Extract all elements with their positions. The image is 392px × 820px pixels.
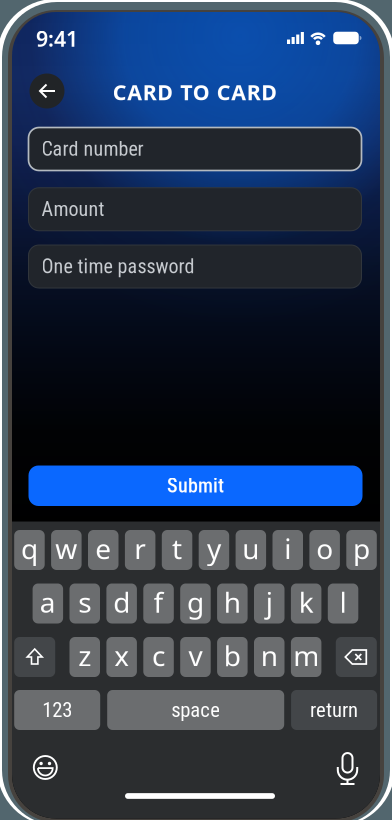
button[interactable]: w (51, 530, 82, 570)
staticText: j (266, 583, 273, 621)
button[interactable]: Delete (336, 637, 377, 677)
staticText: i (284, 530, 291, 567)
staticText: u (242, 530, 259, 567)
staticText: space (171, 698, 220, 722)
staticText: f (153, 583, 163, 621)
button[interactable]: r (125, 530, 155, 570)
button[interactable]: j (254, 583, 284, 623)
button[interactable]: p (346, 530, 377, 570)
staticText: z (78, 637, 91, 674)
staticText: CARD TO CARD (113, 78, 277, 106)
button[interactable]: t (162, 530, 192, 570)
button[interactable]: d (106, 583, 137, 623)
button[interactable]: Dictate (332, 751, 362, 786)
staticText: r (134, 530, 146, 567)
staticText: m (293, 637, 319, 674)
button[interactable]: m (291, 637, 321, 677)
staticText: n (261, 637, 278, 674)
staticText: e (95, 530, 111, 567)
staticText: Card number (41, 137, 143, 161)
button[interactable]: Card number (28, 127, 361, 170)
button[interactable]: One time password (28, 245, 361, 288)
button[interactable]: Shift (14, 637, 55, 677)
button[interactable]: q (14, 530, 45, 570)
button[interactable]: n (254, 637, 284, 677)
staticText: a (40, 583, 56, 621)
button[interactable]: Back (29, 73, 64, 108)
button[interactable]: Amount (28, 188, 361, 231)
staticText: return (310, 698, 358, 722)
button[interactable]: l (328, 583, 358, 623)
staticText: s (78, 583, 91, 621)
button[interactable]: h (217, 583, 248, 623)
button[interactable]: c (143, 637, 174, 677)
button[interactable]: u (236, 530, 266, 570)
staticText: v (188, 637, 202, 674)
button[interactable]: b (217, 637, 248, 677)
staticText: p (353, 530, 370, 567)
button[interactable]: return (291, 690, 377, 730)
staticText: Amount (41, 197, 104, 221)
button[interactable]: o (309, 530, 340, 570)
button[interactable]: 123 (14, 690, 100, 730)
button[interactable]: g (180, 583, 211, 623)
staticText: o (316, 530, 333, 567)
button[interactable]: i (272, 530, 303, 570)
staticText: b (224, 637, 241, 674)
button[interactable]: e (88, 530, 118, 570)
button[interactable]: Emoji (31, 753, 59, 781)
staticText: One time password (41, 255, 194, 278)
staticText: l (340, 583, 347, 621)
staticText: 9:41 (36, 24, 78, 53)
button[interactable]: v (180, 637, 211, 677)
staticText: 123 (42, 698, 72, 722)
staticText: k (299, 583, 314, 621)
staticText: Submit (167, 474, 224, 497)
staticText: w (55, 530, 77, 567)
staticText: q (21, 530, 38, 567)
button[interactable]: k (291, 583, 321, 623)
staticText: c (152, 637, 165, 674)
staticText: t (172, 530, 182, 567)
button[interactable]: space (107, 690, 284, 730)
button[interactable]: a (33, 583, 63, 623)
button[interactable]: z (69, 637, 100, 677)
button[interactable]: x (106, 637, 137, 677)
staticText: h (224, 583, 241, 621)
button[interactable]: Submit (28, 465, 362, 506)
staticText: x (114, 637, 129, 674)
button[interactable]: y (199, 530, 229, 570)
staticText: d (113, 583, 130, 621)
button[interactable]: f (143, 583, 174, 623)
staticText: y (207, 530, 221, 567)
button[interactable]: s (69, 583, 100, 623)
staticText: g (187, 583, 204, 621)
